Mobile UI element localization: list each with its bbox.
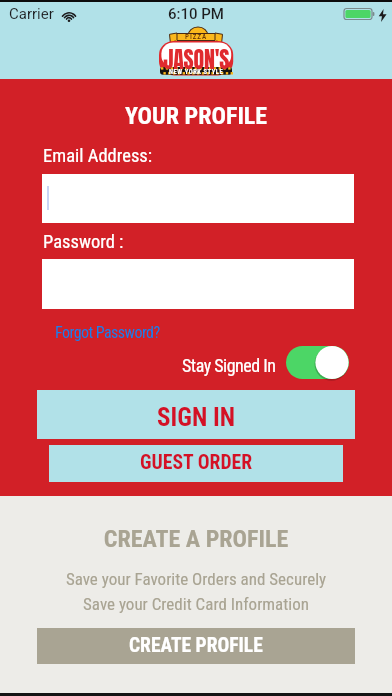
staticText: NEW YORK STYLE [169,68,224,76]
staticText: Stay Signed In [182,355,276,376]
staticText: Email Address: [43,145,153,167]
staticText: Save your Favorite Orders and Securely S… [0,569,392,614]
staticText: YOUR PROFILE [0,102,392,130]
staticText: PIZZA [185,33,208,41]
other: Battery [344,7,376,21]
staticText: GUEST ORDER [140,451,253,474]
staticText: JASON'S [163,42,230,77]
staticText: Carrier [9,5,54,23]
staticText: CREATE PROFILE [129,634,263,657]
other: Charging [378,9,387,22]
other: Wi-Fi [61,10,77,22]
staticText: CREATE A PROFILE [0,525,392,553]
button[interactable]: Forgot Password? [55,323,160,342]
other: Jason's Pizza logo [157,27,235,76]
button[interactable]: SIGN IN [37,390,355,439]
button[interactable]: Stay Signed In toggle [284,344,351,381]
staticText: 6:10 PM [168,5,224,23]
button[interactable]: CREATE PROFILE [37,628,355,664]
staticText: Password : [43,231,124,253]
button[interactable]: GUEST ORDER [49,445,343,482]
staticText: SIGN IN [157,403,236,432]
